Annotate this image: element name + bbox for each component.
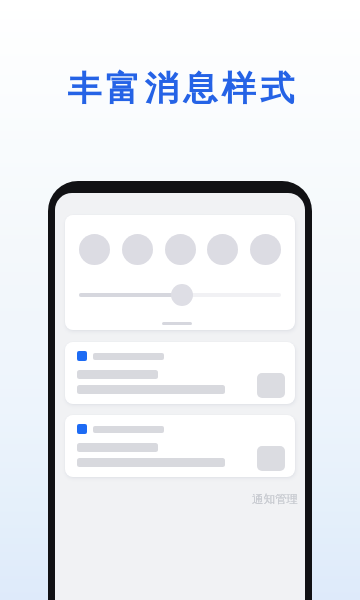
button[interactable]: Brightness slider xyxy=(171,284,193,306)
button[interactable]: Quick setting toggle xyxy=(79,234,110,265)
button[interactable]: Quick setting toggle xyxy=(207,234,238,265)
button[interactable]: Quick setting toggle xyxy=(122,234,153,265)
button[interactable]: Quick setting toggle xyxy=(250,234,281,265)
button[interactable] xyxy=(65,415,295,477)
staticText: 丰富消息样式 xyxy=(3,67,360,110)
button[interactable] xyxy=(65,342,295,404)
button[interactable]: Quick setting toggle xyxy=(65,215,295,330)
button[interactable]: Quick setting toggle xyxy=(165,234,196,265)
button[interactable]: 通知管理 xyxy=(55,492,298,506)
